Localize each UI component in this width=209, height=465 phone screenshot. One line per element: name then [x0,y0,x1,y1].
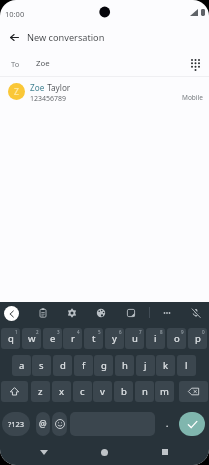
staticText: h [122,359,128,372]
button[interactable]: Collapse toolbar [4,306,19,321]
staticText: f [82,359,86,372]
staticText: 2 [36,329,39,335]
button[interactable]: More options [157,303,177,323]
button[interactable]: v [93,381,112,402]
button[interactable]: j [136,355,155,376]
staticText: 5 [98,329,101,335]
staticText: z [38,385,43,398]
button[interactable]: Send [179,412,205,436]
button[interactable]: o [167,328,186,349]
staticText: k [163,359,169,372]
staticText: n [142,385,148,398]
staticText: 8 [160,329,163,335]
button[interactable]: Z [0,77,209,105]
button[interactable]: Back [34,442,54,462]
button[interactable]: k [156,355,175,376]
staticText: d [60,359,66,372]
staticText: u [132,332,138,345]
button[interactable]: Voice input off [186,303,206,323]
button[interactable]: Shift [1,381,28,402]
button[interactable]: y [105,328,124,349]
staticText: s [39,359,44,372]
button[interactable]: ?123 [2,412,30,436]
button[interactable]: Back [1,24,28,51]
button[interactable]: e [43,328,62,349]
button[interactable]: @ [36,412,50,436]
staticText: 7 [139,329,142,335]
staticText: a [19,359,25,372]
button[interactable]: t [84,328,103,349]
button[interactable]: m [155,381,174,402]
button[interactable]: l [177,355,196,376]
staticText: ?123 [8,419,25,429]
button[interactable]: Emoji [52,412,67,436]
staticText: 0 [202,329,205,335]
button[interactable]: f [74,355,93,376]
staticText: Zoe [36,58,50,69]
staticText: c [80,385,85,398]
staticText: Zoe [30,82,45,93]
button[interactable]: Backspace [179,381,208,402]
button[interactable]: u [125,328,144,349]
button[interactable]: w [22,328,41,349]
button[interactable]: d [53,355,72,376]
staticText: 1 [15,329,18,335]
staticText: v [100,385,105,398]
staticText: 4 [77,329,80,335]
staticText: o [174,332,180,345]
button[interactable]: Stickers [121,303,141,323]
button[interactable]: h [115,355,134,376]
staticText: j [144,359,147,372]
staticText: Mobile [182,93,203,102]
button[interactable]: a [12,355,31,376]
button[interactable]: Clipboard [33,303,53,323]
button[interactable]: n [135,381,154,402]
staticText: p [195,332,201,345]
staticText: Taylor [45,82,71,93]
staticText: 6 [119,329,122,335]
staticText: w [28,332,36,345]
staticText: l [185,359,188,372]
button[interactable]: i [146,328,165,349]
staticText: y [112,332,117,345]
staticText: 123456789 [30,94,67,104]
staticText: e [50,332,56,345]
staticText: x [59,385,65,398]
staticText: i [154,332,157,345]
staticText: r [71,332,75,345]
staticText: . [166,418,169,430]
button[interactable]: x [52,381,71,402]
button[interactable]: s [32,355,51,376]
staticText: 9 [181,329,184,335]
staticText: g [101,359,107,372]
staticText: b [121,385,127,398]
button[interactable]: c [73,381,92,402]
button[interactable]: Themes [91,303,111,323]
button[interactable]: Dialpad [183,52,208,77]
staticText: q [8,332,14,345]
staticText: 10:00 [5,9,25,19]
staticText: New conversation [27,31,105,44]
button[interactable]: Settings [62,303,82,323]
staticText: To [11,59,20,69]
staticText: t [92,332,96,345]
button[interactable]: b [114,381,133,402]
button[interactable]: Home [94,442,114,462]
staticText: 3 [57,329,60,335]
staticText: m [160,385,169,398]
button[interactable]: Recents [155,442,175,462]
button[interactable]: q [1,328,20,349]
button[interactable]: r [63,328,82,349]
button[interactable]: g [94,355,113,376]
staticText: Z [14,86,19,98]
button[interactable]: p [188,328,207,349]
button[interactable]: z [31,381,50,402]
staticText: @ [39,418,47,430]
button[interactable]: . [158,412,176,436]
